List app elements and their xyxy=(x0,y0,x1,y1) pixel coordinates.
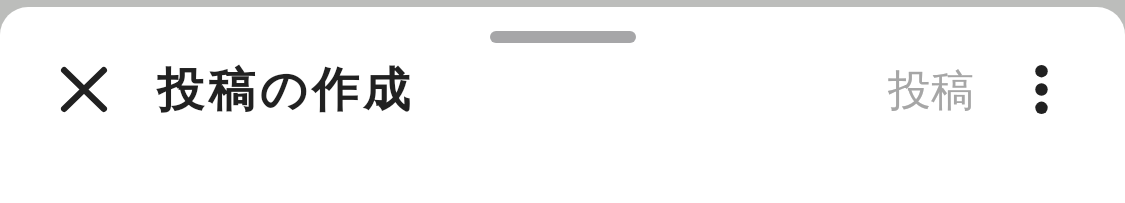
button[interactable]: 閉じる xyxy=(24,48,144,130)
button[interactable]: 投稿 xyxy=(861,46,1001,136)
button[interactable]: その他のオプション xyxy=(1000,42,1082,136)
staticText: 投稿の作成 xyxy=(157,61,415,120)
staticText: 投稿 xyxy=(888,64,974,118)
